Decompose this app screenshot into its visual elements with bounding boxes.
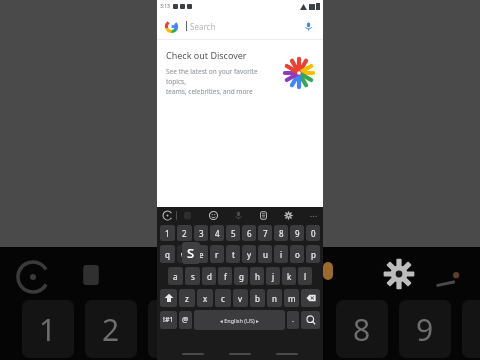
button[interactable]: 0 — [306, 225, 320, 241]
button[interactable]: p — [306, 245, 320, 263]
button[interactable]: m — [284, 289, 299, 307]
staticText: g — [239, 271, 244, 282]
staticText: 2 — [182, 228, 187, 239]
staticText: e — [199, 249, 204, 260]
staticText: 4 — [215, 228, 220, 239]
button[interactable]: 9 — [290, 225, 304, 241]
staticText: 3 — [165, 309, 183, 350]
staticText: b — [255, 293, 260, 304]
staticText: j — [272, 271, 275, 282]
staticText: m — [288, 293, 296, 304]
staticText: 3:13 — [160, 3, 170, 10]
button[interactable]: w — [177, 245, 192, 263]
staticText: n — [272, 293, 277, 304]
staticText: c — [221, 293, 225, 304]
staticText: 8 — [353, 309, 371, 350]
button[interactable]: x — [197, 289, 213, 307]
staticText: 6 — [247, 228, 252, 239]
button[interactable]: n — [267, 289, 282, 307]
staticText: z — [185, 293, 189, 304]
staticText: s — [191, 271, 195, 282]
button[interactable]: 2 — [177, 225, 192, 241]
button[interactable]: a — [168, 267, 183, 285]
staticText: p — [311, 249, 316, 260]
button[interactable]: Google — [157, 13, 323, 39]
button[interactable]: Emoji — [207, 209, 219, 221]
button[interactable]: Backspace — [301, 289, 320, 307]
staticText: 1 — [39, 309, 57, 350]
staticText: h — [255, 271, 260, 282]
button[interactable]: 8 — [274, 225, 288, 241]
button[interactable]: @ — [179, 311, 192, 329]
staticText: S — [187, 244, 195, 262]
button[interactable]: k — [282, 267, 296, 285]
button[interactable]: ◂ English (US) ▸ — [194, 310, 285, 330]
staticText: 2 — [102, 309, 120, 350]
button[interactable]: 6 — [242, 225, 256, 241]
button[interactable]: q — [160, 245, 175, 263]
button[interactable]: 5 — [226, 225, 240, 241]
staticText: u — [263, 249, 268, 260]
button[interactable]: l — [298, 267, 312, 285]
button[interactable]: c — [215, 289, 231, 307]
staticText: o — [295, 249, 300, 260]
staticText: f — [224, 271, 227, 282]
staticText: 9 — [416, 309, 434, 350]
button[interactable]: Settings — [282, 209, 294, 221]
staticText: 9 — [295, 228, 300, 239]
staticText: 8 — [279, 228, 284, 239]
button[interactable]: Voice typing — [161, 209, 173, 221]
button[interactable]: e — [194, 245, 208, 263]
button[interactable]: h — [250, 267, 264, 285]
button[interactable]: Themes — [181, 209, 193, 221]
button[interactable]: More — [307, 209, 319, 221]
staticText: See the latest on your favorite topics, … — [166, 67, 278, 96]
staticText: t — [232, 249, 235, 260]
button[interactable]: b — [250, 289, 265, 307]
button[interactable]: s — [185, 267, 200, 285]
staticText: i — [280, 249, 283, 260]
button[interactable]: Voice search — [301, 19, 315, 33]
button[interactable]: z — [179, 289, 195, 307]
staticText: k — [287, 271, 292, 282]
staticText: y — [247, 249, 252, 260]
staticText: l — [304, 271, 307, 282]
staticText: 5 — [231, 228, 236, 239]
button[interactable]: t — [226, 245, 240, 263]
button[interactable]: 4 — [210, 225, 224, 241]
staticText: a — [173, 271, 178, 282]
button[interactable]: j — [266, 267, 280, 285]
staticText: 1 — [165, 228, 170, 239]
other: Google — [165, 20, 178, 33]
button[interactable]: Shift — [160, 289, 177, 307]
button[interactable]: Microphone — [232, 209, 244, 221]
staticText: ◂ English (US) ▸ — [220, 317, 259, 324]
staticText: !#1 — [163, 315, 174, 325]
button[interactable]: Check out Discover — [157, 40, 323, 105]
staticText: x — [203, 293, 208, 304]
button[interactable]: v — [233, 289, 248, 307]
staticText: w — [181, 249, 188, 260]
button[interactable]: g — [234, 267, 248, 285]
button[interactable]: 7 — [258, 225, 272, 241]
button[interactable]: r — [210, 245, 224, 263]
button[interactable]: u — [258, 245, 272, 263]
button[interactable]: . — [287, 311, 299, 329]
staticText: Check out Discover — [166, 49, 247, 61]
button[interactable]: o — [290, 245, 304, 263]
staticText: v — [238, 293, 243, 304]
staticText: 3 — [199, 228, 204, 239]
staticText: 7 — [263, 228, 268, 239]
button[interactable]: 1 — [160, 225, 175, 241]
button[interactable]: d — [202, 267, 216, 285]
button[interactable]: Clipboard — [257, 209, 269, 221]
staticText: q — [165, 249, 170, 260]
button[interactable]: Search — [301, 311, 320, 329]
button[interactable]: i — [274, 245, 288, 263]
button[interactable]: 3 — [194, 225, 208, 241]
button[interactable]: f — [218, 267, 232, 285]
button[interactable]: y — [242, 245, 256, 263]
staticText: Search — [190, 21, 216, 32]
button[interactable]: !#1 — [160, 311, 177, 329]
